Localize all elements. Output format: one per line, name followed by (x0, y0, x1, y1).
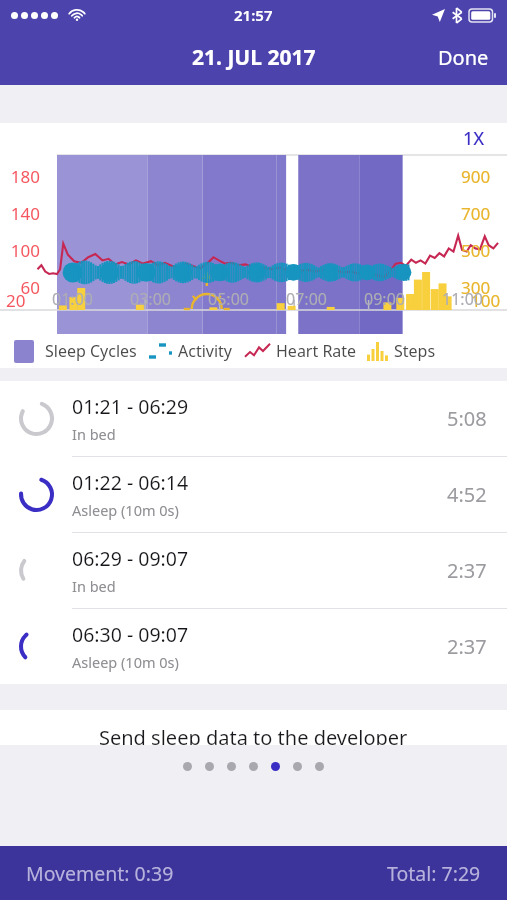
button[interactable]: Page 3 (227, 762, 236, 771)
staticText: 2:37 (447, 557, 487, 584)
staticText: 03:00 (124, 288, 177, 310)
staticText: 06:29 - 09:07 (72, 545, 189, 572)
button[interactable]: 01:21 - 06:29 (0, 381, 507, 456)
button[interactable]: 1X (441, 123, 507, 154)
staticText: Heart Rate (276, 340, 357, 362)
button[interactable]: 01:22 - 06:14 (0, 457, 507, 532)
staticText: 100 (471, 289, 501, 312)
staticText: Asleep (10m 0s) (72, 652, 179, 672)
staticText: In bed (72, 576, 116, 596)
staticText: Steps (394, 340, 436, 362)
staticText: Movement: 0:39 (26, 860, 174, 887)
button[interactable]: Page 6 (293, 762, 302, 771)
staticText: 5:08 (447, 405, 487, 432)
button[interactable]: Page 1 (183, 762, 192, 771)
button[interactable]: 06:30 - 09:07 (0, 609, 507, 684)
staticText: Done (438, 44, 489, 71)
staticText: 21:57 (234, 5, 273, 25)
staticText: Total: 7:29 (387, 860, 481, 887)
staticText: 1X (463, 126, 485, 151)
staticText: Activity (178, 340, 233, 362)
staticText: 140 (0, 202, 40, 225)
button[interactable]: Page 7 (315, 762, 324, 771)
staticText: 07:00 (280, 288, 333, 310)
button[interactable]: Page 5 (271, 762, 280, 771)
staticText: 05:00 (202, 288, 255, 310)
staticText: 2:37 (447, 633, 487, 660)
staticText: 01:00 (46, 288, 99, 310)
staticText: 300 (461, 276, 507, 299)
staticText: Sleep Cycles (45, 340, 137, 362)
button[interactable]: Send sleep data to the developer (0, 710, 507, 745)
staticText: In bed (72, 424, 116, 444)
button[interactable]: 06:29 - 09:07 (0, 533, 507, 608)
staticText: 100 (0, 239, 40, 262)
staticText: 01:21 - 06:29 (72, 393, 189, 420)
button[interactable]: Page 2 (205, 762, 214, 771)
staticText: 06:30 - 09:07 (72, 621, 189, 648)
staticText: 700 (461, 202, 507, 225)
staticText: 11:00 (436, 288, 489, 310)
staticText: Send sleep data to the developer (99, 724, 408, 745)
staticText: 500 (461, 239, 507, 262)
staticText: Asleep (10m 0s) (72, 500, 179, 520)
staticText: 21. JUL 2017 (192, 43, 316, 72)
staticText: 900 (461, 165, 507, 188)
staticText: 09:00 (358, 288, 411, 310)
staticText: 4:52 (447, 481, 487, 508)
staticText: 180 (0, 165, 40, 188)
staticText: 01:22 - 06:14 (72, 469, 189, 496)
button[interactable]: Page 4 (249, 762, 258, 771)
button[interactable]: Done (420, 30, 507, 85)
staticText: 20 (6, 289, 26, 312)
staticText: 60 (0, 276, 40, 299)
